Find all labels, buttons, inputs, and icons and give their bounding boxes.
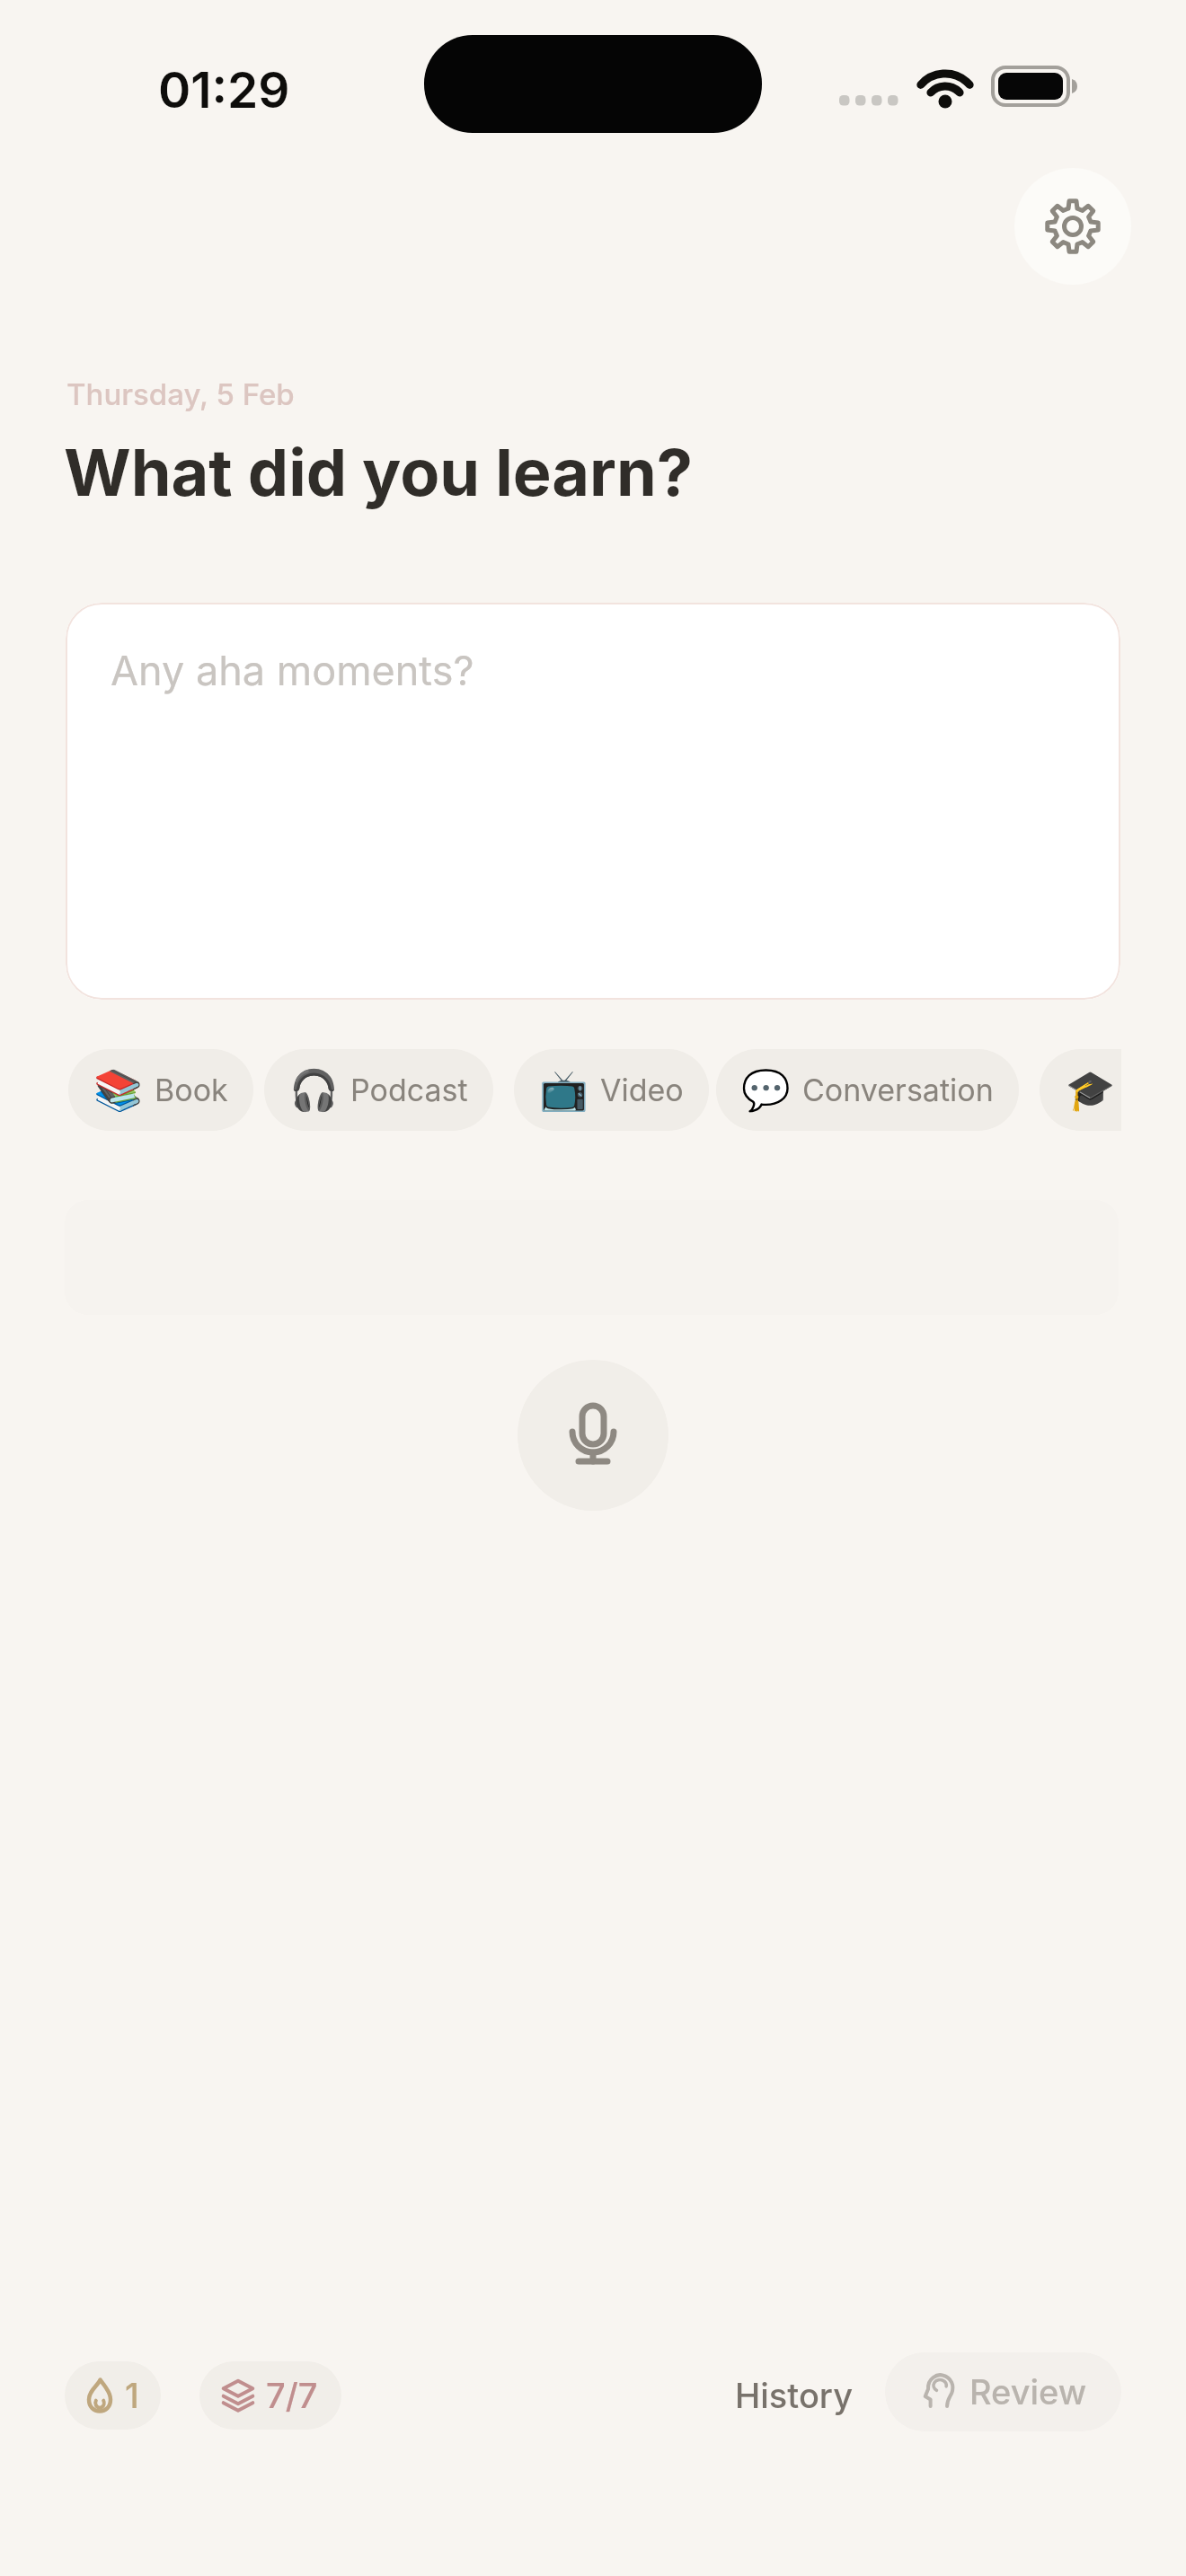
button[interactable]: 1 (65, 2361, 161, 2430)
staticText: 💬 (741, 1067, 791, 1114)
staticText: What did you learn? (64, 433, 694, 511)
button[interactable]: Review (885, 2352, 1121, 2431)
staticText: Video (600, 1072, 684, 1108)
staticText: Podcast (350, 1072, 468, 1108)
button[interactable]: 🎓 (1040, 1049, 1121, 1131)
staticText: 1 (125, 2375, 139, 2416)
staticText: Conversation (802, 1072, 994, 1108)
staticText: 7/7 (266, 2375, 318, 2416)
button[interactable]: 7/7 (199, 2361, 341, 2430)
button[interactable]: 📚 (68, 1049, 253, 1131)
button[interactable]: 🎧 (264, 1049, 493, 1131)
button[interactable] (1014, 168, 1131, 285)
staticText: 🎓 (1066, 1067, 1115, 1114)
button[interactable]: Any aha moments? (66, 603, 1120, 1000)
button[interactable]: 💬 (716, 1049, 1019, 1131)
staticText: Thursday, 5 Feb (66, 376, 295, 412)
staticText: 📺 (539, 1067, 589, 1114)
staticText: 01:29 (158, 60, 290, 112)
staticText: Book (155, 1072, 228, 1108)
staticText: History (735, 2375, 853, 2416)
button[interactable]: History (719, 2362, 869, 2429)
button[interactable]: 📺 (514, 1049, 709, 1131)
button[interactable] (518, 1360, 668, 1511)
staticText: Review (969, 2371, 1087, 2413)
staticText: 🎧 (289, 1067, 339, 1114)
staticText: 📚 (93, 1067, 143, 1114)
staticText: Any aha moments? (111, 646, 474, 694)
